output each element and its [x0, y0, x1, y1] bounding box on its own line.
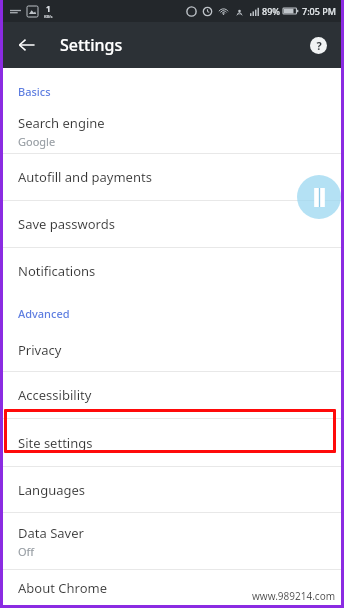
staticText: 7:05 PM	[302, 5, 336, 17]
staticText: About Chrome	[18, 579, 107, 597]
staticText: Search engine	[18, 114, 105, 132]
staticText: 89%	[262, 5, 280, 17]
button[interactable]: Back	[11, 29, 43, 61]
staticText: Notifications	[18, 262, 96, 280]
button[interactable]: Site settings	[3, 419, 341, 466]
staticText: Off	[18, 544, 35, 559]
button[interactable]: About Chrome	[3, 570, 341, 605]
button[interactable]: Accessibility	[3, 372, 341, 418]
button[interactable]: Save passwords	[3, 201, 341, 247]
staticText: Languages	[18, 481, 86, 499]
staticText: Google	[18, 134, 56, 149]
staticText: Accessibility	[18, 386, 92, 404]
button[interactable]: Notifications	[3, 248, 341, 294]
button[interactable]: Languages	[3, 467, 341, 512]
staticText: Autofill and payments	[18, 168, 152, 186]
button[interactable]	[4, 409, 336, 453]
staticText: 1	[46, 3, 51, 14]
staticText: KB/s	[44, 14, 53, 19]
staticText: Basics	[18, 84, 51, 99]
button[interactable]: Help	[304, 31, 332, 59]
staticText: Site settings	[18, 434, 93, 452]
staticText: Settings	[60, 34, 123, 56]
staticText: ?	[316, 38, 322, 53]
staticText: Save passwords	[18, 215, 115, 233]
staticText: www.989214.com	[252, 589, 336, 603]
button[interactable]: Autofill and payments	[3, 154, 341, 200]
staticText: Data Saver	[18, 524, 84, 542]
button[interactable]: Data Saver	[3, 513, 341, 569]
staticText: Advanced	[18, 306, 70, 321]
staticText: Privacy	[18, 341, 62, 359]
button[interactable]: Search engine	[3, 109, 341, 153]
button[interactable]: Privacy	[3, 329, 341, 371]
